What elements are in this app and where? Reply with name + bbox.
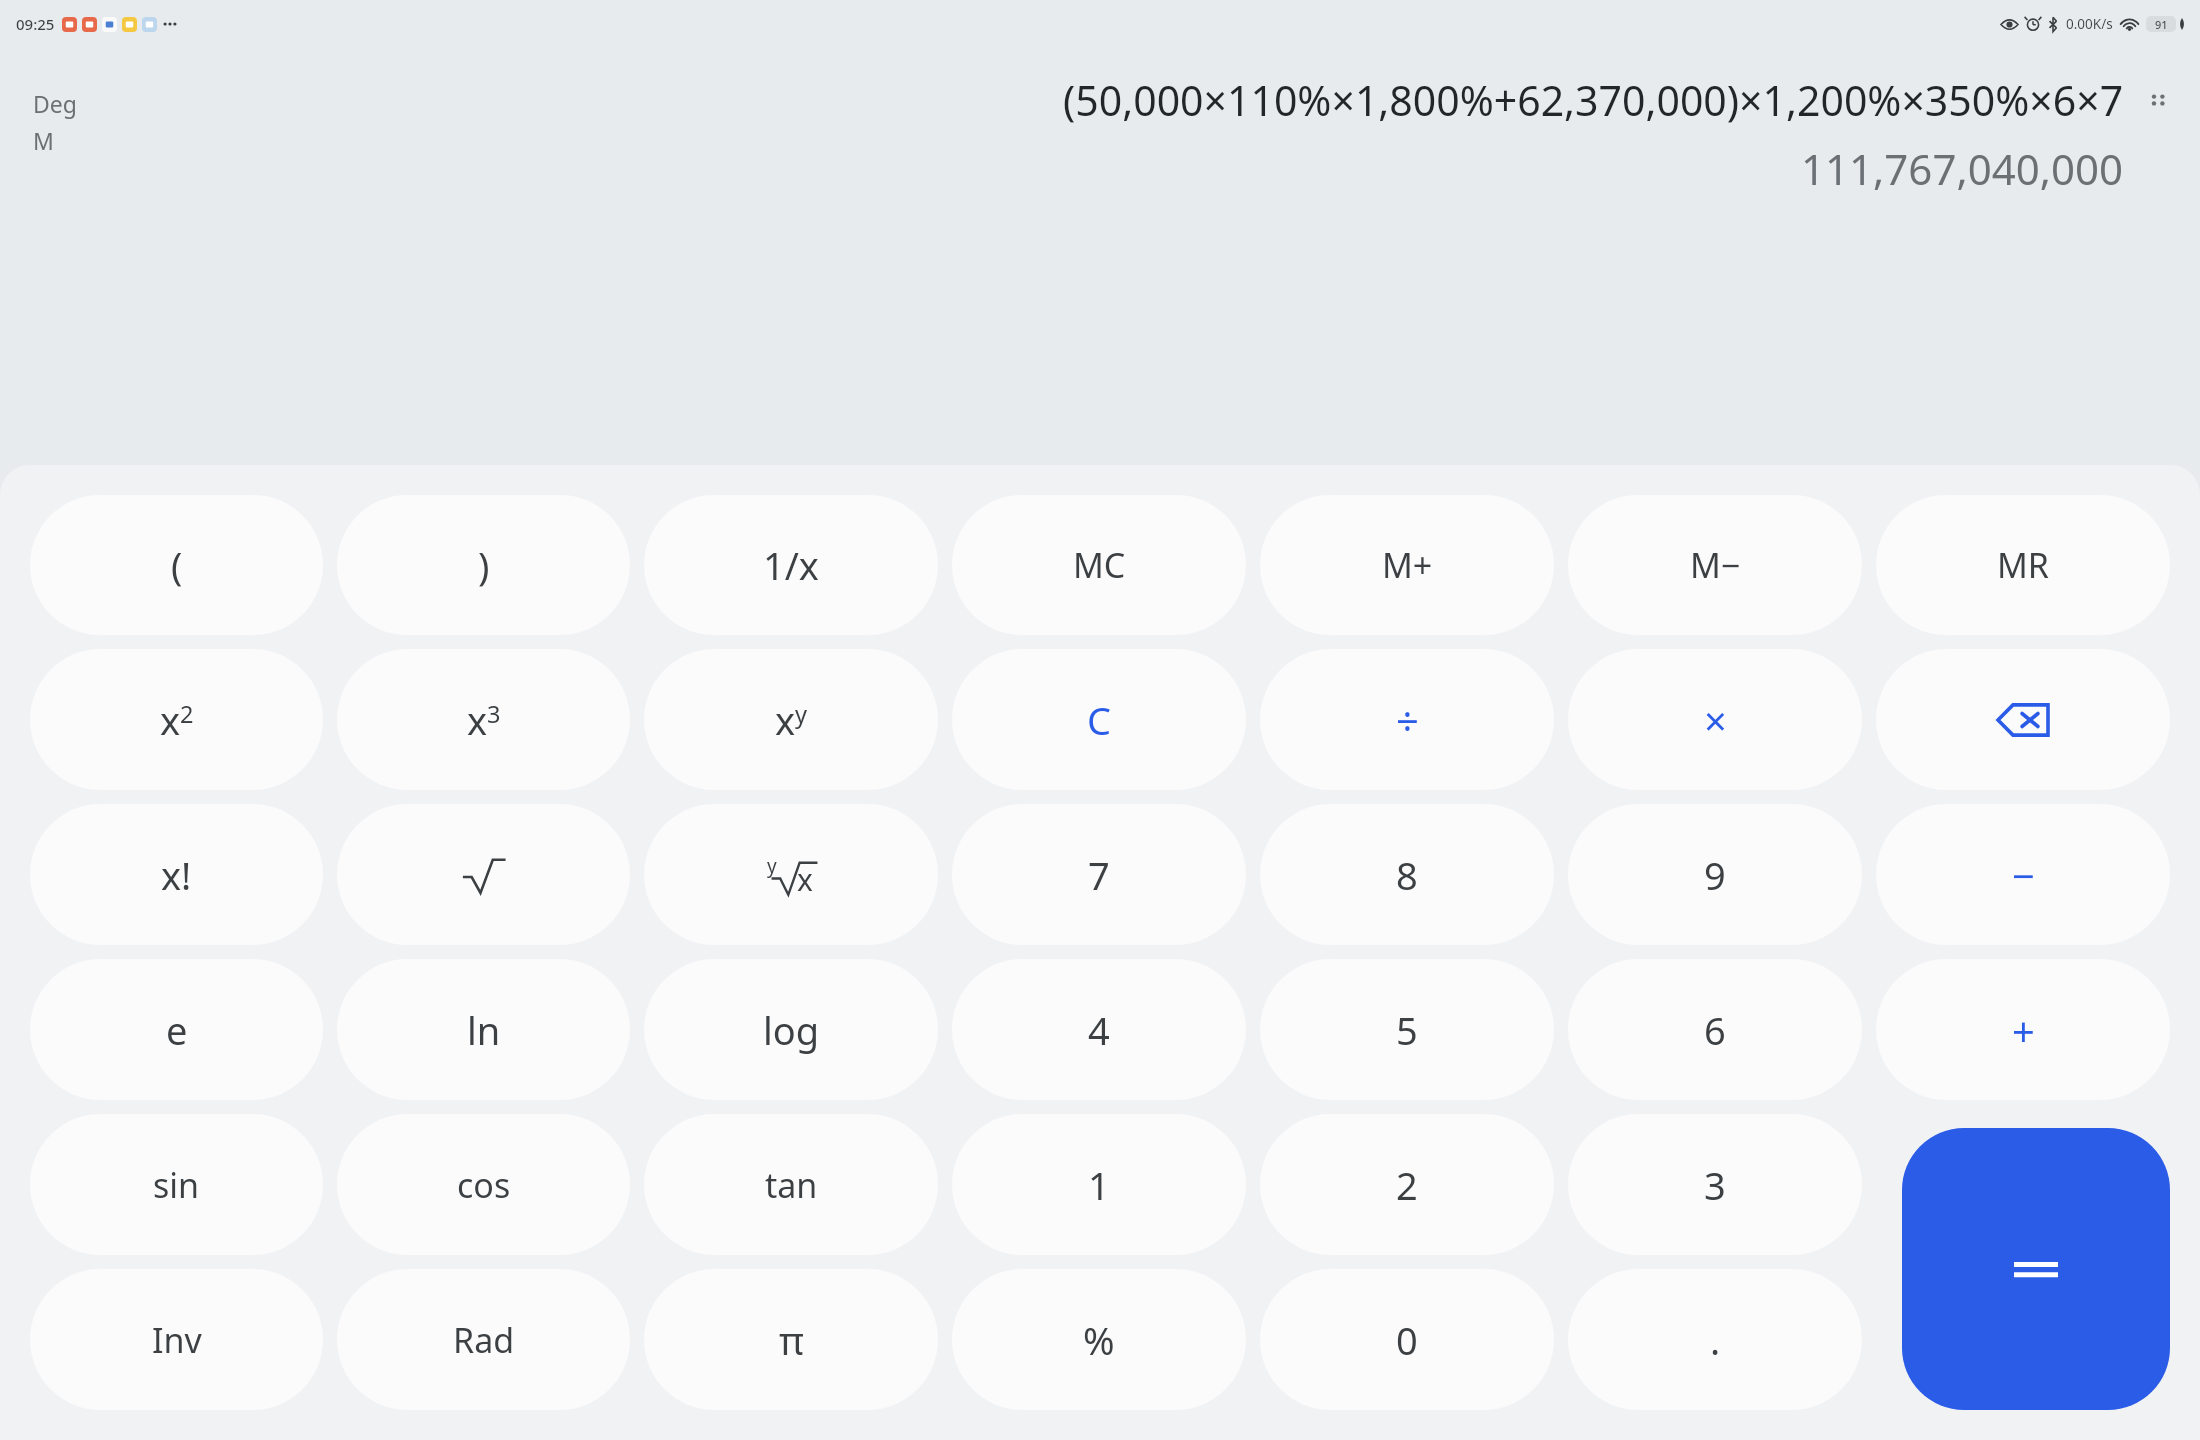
button[interactable]: .	[1568, 1269, 1862, 1410]
staticText: %	[1083, 1314, 1115, 1366]
staticText: ln	[467, 1004, 501, 1056]
staticText: x3	[467, 694, 501, 746]
staticText: (50,000×110%×1,800%+62,370,000)×1,200%×3…	[1063, 72, 2124, 128]
button[interactable]	[1902, 1128, 2170, 1410]
staticText: xy	[775, 694, 808, 746]
staticText: C	[1087, 694, 1112, 746]
button[interactable]: )	[337, 495, 630, 635]
button[interactable]: +	[1876, 959, 2170, 1100]
staticText: MC	[1073, 542, 1126, 588]
button[interactable]: x2	[30, 649, 323, 790]
staticText: Rad	[453, 1317, 515, 1363]
staticText: 0	[1396, 1314, 1418, 1366]
button[interactable]: ×	[1568, 649, 1862, 790]
button[interactable]: M−	[1568, 495, 1862, 635]
staticText: 111,767,040,000	[1801, 140, 2124, 197]
button[interactable]: e	[30, 959, 323, 1100]
button[interactable]: (	[30, 495, 323, 635]
staticText: 7	[1088, 849, 1110, 901]
button[interactable]: ln	[337, 959, 630, 1100]
button[interactable]: More options	[2144, 86, 2172, 114]
button[interactable]: 6	[1568, 959, 1862, 1100]
staticText: x	[797, 859, 813, 900]
button[interactable]: MC	[952, 495, 1246, 635]
staticText: .	[1710, 1314, 1721, 1366]
staticText: sin	[153, 1162, 200, 1208]
staticText: +	[2012, 1003, 2035, 1057]
button[interactable]: 7	[952, 804, 1246, 945]
staticText: 8	[1396, 849, 1418, 901]
button[interactable]: tan	[644, 1114, 938, 1255]
button[interactable]: 3	[1568, 1114, 1862, 1255]
button[interactable]: M+	[1260, 495, 1554, 635]
button[interactable]: log	[644, 959, 938, 1100]
staticText: (	[171, 539, 183, 591]
staticText: 6	[1704, 1004, 1726, 1056]
staticText: M+	[1382, 542, 1433, 588]
staticText: Inv	[152, 1317, 202, 1363]
button[interactable]: 4	[952, 959, 1246, 1100]
staticText: 9	[1704, 849, 1726, 901]
button[interactable]: cos	[337, 1114, 630, 1255]
staticText: ÷	[1396, 693, 1419, 747]
button[interactable]: Inv	[30, 1269, 323, 1410]
staticText: e	[166, 1004, 188, 1056]
staticText: 09:25	[16, 14, 55, 34]
staticText: 1/x	[763, 539, 819, 591]
button[interactable]: 5	[1260, 959, 1554, 1100]
button[interactable]: x3	[337, 649, 630, 790]
staticText: )	[478, 539, 490, 591]
staticText: y	[767, 853, 777, 879]
button[interactable]: 8	[1260, 804, 1554, 945]
staticText: tan	[765, 1162, 818, 1208]
staticText: x!	[161, 849, 192, 901]
staticText: log	[763, 1004, 820, 1056]
button[interactable]: xy	[644, 649, 938, 790]
staticText: cos	[457, 1162, 511, 1208]
button[interactable]: Rad	[337, 1269, 630, 1410]
button[interactable]: MR	[1876, 495, 2170, 635]
button[interactable]: 1	[952, 1114, 1246, 1255]
staticText: 0.00K/s	[2066, 15, 2113, 33]
button[interactable]: %	[952, 1269, 1246, 1410]
button[interactable]: π	[644, 1269, 938, 1410]
staticText: π	[779, 1314, 804, 1366]
staticText: M−	[1690, 542, 1741, 588]
button[interactable]: 0	[1260, 1269, 1554, 1410]
button[interactable]: Nth root	[644, 804, 938, 945]
button[interactable]: −	[1876, 804, 2170, 945]
staticText: 3	[1704, 1159, 1726, 1211]
button[interactable]: C	[952, 649, 1246, 790]
staticText: 5	[1396, 1004, 1418, 1056]
button[interactable]: 2	[1260, 1114, 1554, 1255]
button[interactable]: 9	[1568, 804, 1862, 945]
button[interactable]: ÷	[1260, 649, 1554, 790]
staticText: ×	[1704, 693, 1727, 747]
staticText: 1	[1088, 1159, 1110, 1211]
button[interactable]: x!	[30, 804, 323, 945]
staticText: −	[2012, 848, 2035, 902]
button[interactable]: Square root	[337, 804, 630, 945]
staticText: 2	[1396, 1159, 1418, 1211]
staticText: x2	[160, 694, 194, 746]
staticText: Deg	[33, 88, 77, 119]
button[interactable]: 1/x	[644, 495, 938, 635]
staticText: 91	[2155, 17, 2168, 32]
staticText: 4	[1088, 1004, 1110, 1056]
staticText: MR	[1997, 542, 2049, 588]
button[interactable]: sin	[30, 1114, 323, 1255]
staticText: M	[33, 125, 54, 156]
button[interactable]: Backspace	[1876, 649, 2170, 790]
